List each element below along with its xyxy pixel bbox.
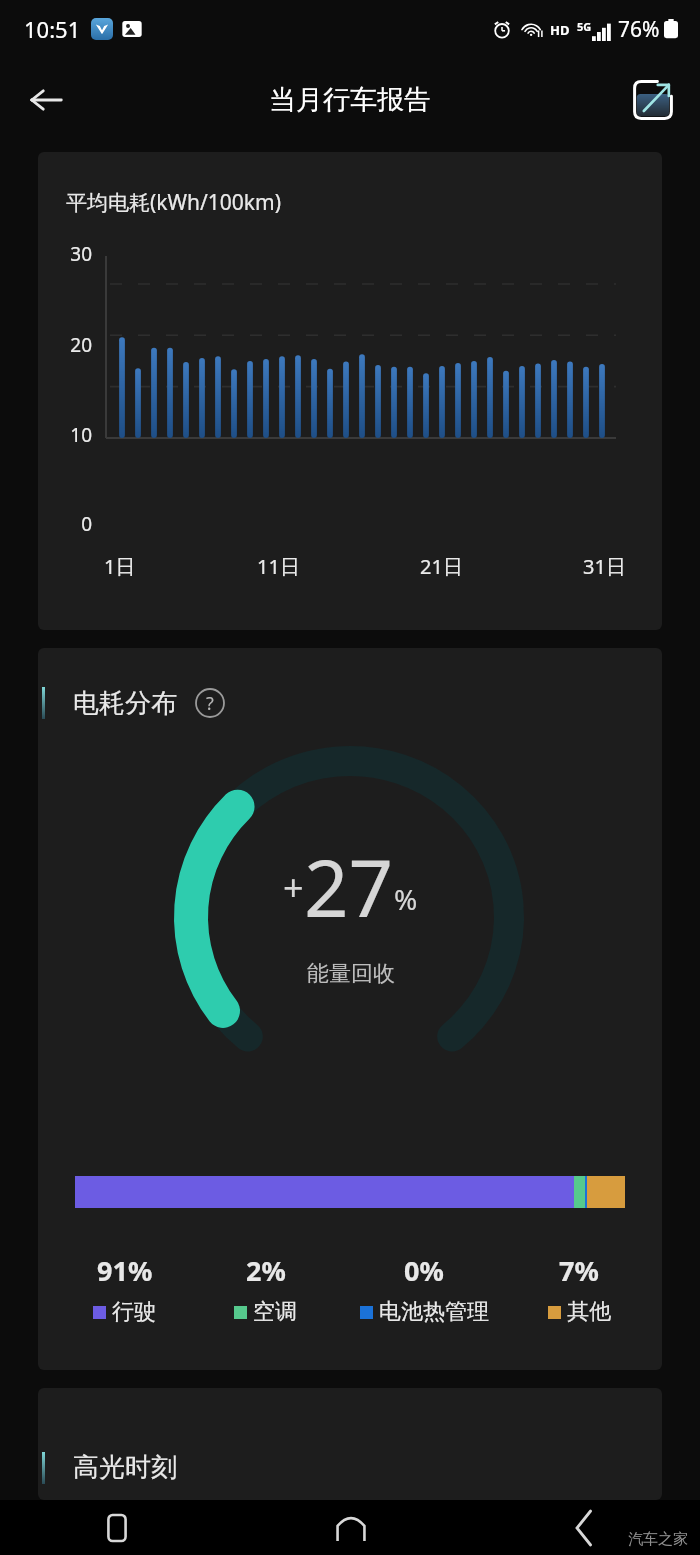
staticText: 31日	[583, 553, 626, 580]
staticText: 76%	[618, 15, 660, 44]
staticText: 汽车之家	[628, 1530, 688, 1549]
staticText: 空调	[253, 1298, 297, 1326]
staticText: 能量回收	[307, 960, 395, 988]
staticText: 平均电耗(kWh/100km)	[66, 188, 282, 217]
staticText: 30	[38, 241, 92, 267]
staticText: 电池热管理	[379, 1298, 489, 1326]
button[interactable]: 主页	[234, 1500, 467, 1555]
staticText: 10:51	[24, 14, 81, 44]
staticText: HD	[550, 21, 570, 39]
staticText: 7%	[559, 1252, 599, 1289]
staticText: +	[283, 863, 304, 912]
button[interactable]: 最近任务	[0, 1500, 234, 1555]
button[interactable]: 分享	[624, 71, 682, 129]
staticText: 10	[38, 422, 92, 448]
staticText: 高光时刻	[73, 1451, 177, 1484]
button[interactable]: 返回	[18, 72, 74, 128]
staticText: 电耗分布	[73, 687, 177, 720]
button[interactable]: 电耗分布	[38, 648, 662, 1370]
staticText: 91%	[97, 1252, 153, 1289]
staticText: 行驶	[112, 1298, 156, 1326]
button[interactable]: 7%	[512, 1252, 646, 1326]
staticText: ?	[206, 691, 214, 716]
button[interactable]: 0%	[336, 1252, 512, 1326]
staticText: 27	[304, 834, 394, 940]
staticText: 20	[38, 332, 92, 358]
staticText: 11日	[257, 553, 300, 580]
button[interactable]: 返回	[467, 1500, 700, 1555]
staticText: 1日	[104, 553, 136, 580]
staticText: %	[394, 880, 418, 918]
button[interactable]: 平均电耗(kWh/100km)	[38, 152, 662, 630]
staticText: 当月行车报告	[269, 83, 431, 117]
staticText: 5G	[577, 19, 592, 34]
staticText: 其他	[567, 1298, 611, 1326]
staticText: 2%	[246, 1252, 286, 1289]
button[interactable]: 帮助	[193, 686, 227, 720]
staticText: 21日	[420, 553, 463, 580]
staticText: 0%	[404, 1252, 444, 1289]
button[interactable]: 91%	[54, 1252, 195, 1326]
button[interactable]: 2%	[195, 1252, 336, 1326]
staticText: 0	[38, 511, 92, 537]
button[interactable]: 高光时刻	[38, 1388, 662, 1500]
